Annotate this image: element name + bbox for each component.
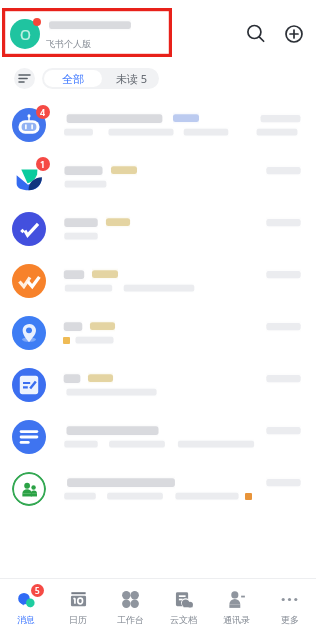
button[interactable]: 4 [0, 99, 316, 151]
staticText: 未读 5 [116, 71, 148, 86]
button[interactable]: Search [239, 17, 273, 51]
button[interactable] [0, 463, 316, 515]
button[interactable]: 全部 [44, 70, 102, 87]
staticText: 飞书个人版 [46, 38, 91, 49]
button[interactable] [0, 255, 316, 307]
staticText: 更多 [281, 614, 299, 625]
button[interactable]: 1 [0, 151, 316, 203]
button[interactable]: 工作台 [104, 579, 157, 634]
button[interactable]: 通讯录 [210, 579, 263, 634]
button[interactable]: Filter [14, 68, 35, 89]
button[interactable] [0, 203, 316, 255]
staticText: 4 [40, 106, 46, 118]
button[interactable]: 日历 [52, 579, 104, 634]
button[interactable]: 云文档 [157, 579, 210, 634]
staticText: 消息 [17, 614, 35, 625]
button[interactable]: 更多 [263, 579, 316, 634]
staticText: 通讯录 [223, 614, 250, 625]
staticText: 5 [35, 585, 40, 596]
staticText: 日历 [69, 614, 87, 625]
staticText: 1 [40, 158, 46, 170]
button[interactable]: 5 [0, 579, 52, 634]
button[interactable]: 未读 5 [104, 68, 159, 89]
staticText: 工作台 [117, 614, 144, 625]
button[interactable]: Add [277, 17, 311, 51]
staticText: O [20, 25, 31, 44]
button[interactable] [0, 359, 316, 411]
staticText: 云文档 [170, 614, 197, 625]
staticText: 全部 [62, 72, 84, 86]
button[interactable] [0, 411, 316, 463]
button[interactable] [0, 307, 316, 359]
button[interactable]: O [10, 10, 239, 58]
